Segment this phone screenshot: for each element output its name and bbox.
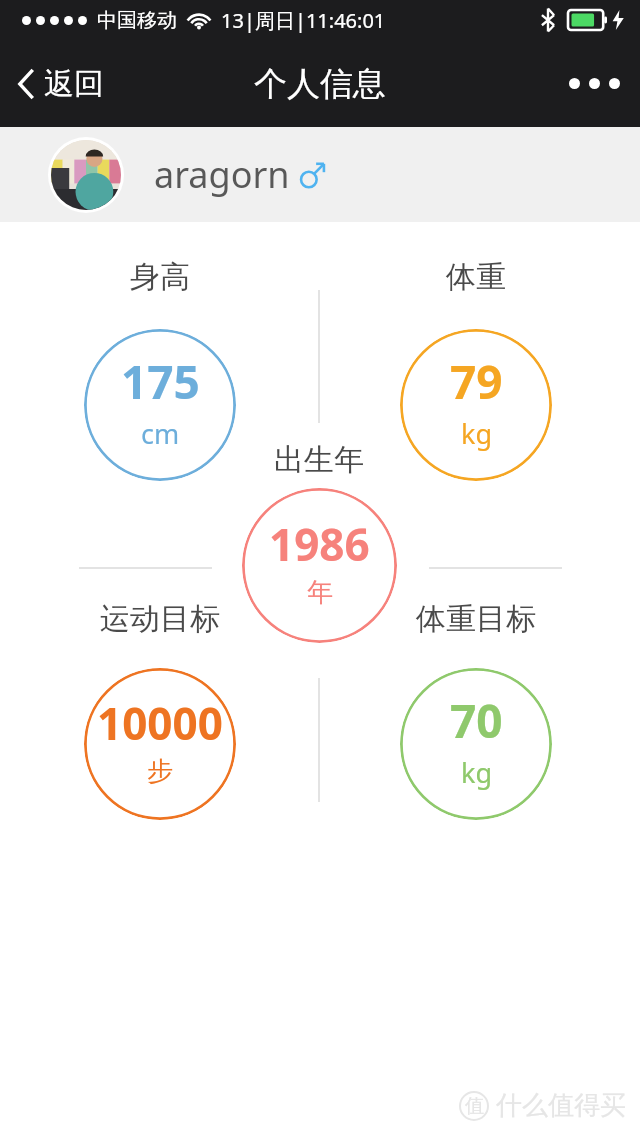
button[interactable]: 175 xyxy=(84,329,236,481)
staticText: 什么值得买 xyxy=(496,1089,626,1122)
staticText: 出生年 xyxy=(189,441,449,479)
staticText: 10000 xyxy=(97,693,223,753)
button[interactable]: 70 xyxy=(400,668,552,820)
staticText: 13|周日|11:46:01 xyxy=(221,7,386,34)
staticText: 步 xyxy=(147,755,173,788)
staticText: aragorn xyxy=(154,150,290,199)
button[interactable]: 返回 xyxy=(0,57,122,111)
staticText: 175 xyxy=(121,350,200,413)
staticText: 年 xyxy=(307,576,333,609)
button[interactable]: 10000 xyxy=(84,668,236,820)
staticText: 1986 xyxy=(269,514,370,574)
staticText: 体重目标 xyxy=(346,600,606,638)
staticText: 身高 xyxy=(30,258,290,296)
staticText: 70 xyxy=(450,689,503,752)
staticText: 中国移动 xyxy=(97,8,177,33)
staticText: 体重 xyxy=(346,258,606,296)
staticText: kg xyxy=(461,754,493,791)
staticText: cm xyxy=(141,415,180,452)
staticText: 79 xyxy=(450,350,503,413)
button[interactable]: More options xyxy=(549,62,640,105)
button[interactable]: 1986 xyxy=(242,488,397,643)
staticText: 值 xyxy=(465,1094,484,1118)
staticText: 个人信息 xyxy=(254,63,386,105)
staticText: kg xyxy=(461,415,493,452)
button[interactable]: 79 xyxy=(400,329,552,481)
staticText: 运动目标 xyxy=(30,600,290,638)
staticText: 返回 xyxy=(44,65,104,103)
button[interactable]: aragorn xyxy=(0,127,640,222)
